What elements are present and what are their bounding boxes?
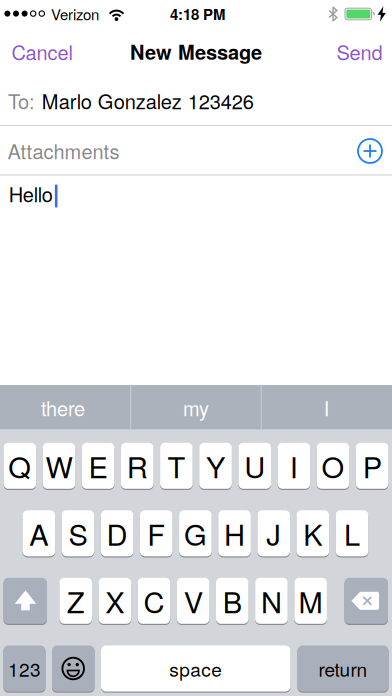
staticText: F [147, 512, 165, 554]
staticText: Q [8, 445, 31, 487]
button[interactable]: Add attachment [355, 136, 385, 166]
staticText: A [29, 512, 48, 554]
staticText: I [324, 393, 330, 422]
staticText: Cancel [11, 37, 72, 66]
button[interactable]: Delete [344, 577, 388, 625]
staticText: S [68, 512, 87, 554]
button[interactable]: H [218, 509, 251, 557]
staticText: N [261, 580, 282, 622]
staticText: E [89, 445, 108, 487]
button[interactable]: Send [327, 34, 391, 68]
button[interactable]: F [140, 509, 172, 557]
staticText: 123 [8, 655, 41, 682]
button[interactable]: L [336, 509, 368, 557]
staticText: Hello [9, 179, 53, 208]
staticText: D [107, 512, 128, 554]
button[interactable]: J [257, 509, 290, 557]
staticText: B [223, 580, 242, 622]
button[interactable]: space [101, 644, 290, 692]
button[interactable]: I [268, 385, 386, 429]
button[interactable]: there [4, 385, 122, 429]
staticText: O [321, 445, 344, 487]
staticText: Y [206, 445, 225, 487]
button[interactable]: R [121, 442, 154, 490]
button[interactable]: V [177, 577, 209, 625]
staticText: Z [67, 580, 85, 622]
button[interactable]: D [101, 509, 133, 557]
staticText: Verizon [51, 3, 99, 24]
button[interactable]: W [43, 442, 75, 490]
button[interactable]: T [160, 442, 193, 490]
button[interactable]: P [356, 442, 388, 490]
button[interactable]: N [255, 577, 288, 625]
staticText: To: [8, 86, 35, 115]
staticText: L [344, 512, 360, 554]
button[interactable]: E [82, 442, 114, 490]
staticText: Marlo Gonzalez 123426 [42, 86, 254, 115]
staticText: my [183, 393, 209, 422]
staticText: K [303, 512, 322, 554]
button[interactable]: Cancel [2, 34, 82, 68]
staticText: X [105, 580, 124, 622]
staticText: U [244, 445, 265, 487]
button[interactable]: G [179, 509, 212, 557]
button[interactable]: A [22, 509, 55, 557]
staticText: there [41, 393, 85, 422]
button[interactable]: K [297, 509, 329, 557]
staticText: W [45, 445, 72, 487]
button[interactable]: Z [59, 577, 92, 625]
button[interactable]: my [137, 385, 255, 429]
button[interactable]: 123 [3, 644, 45, 692]
button[interactable]: M [294, 577, 327, 625]
button[interactable]: O [317, 442, 349, 490]
button[interactable]: S [62, 509, 94, 557]
button[interactable]: return [297, 644, 388, 692]
staticText: space [169, 655, 222, 682]
staticText: P [363, 445, 382, 487]
staticText: return [318, 655, 367, 682]
button[interactable]: Shift [3, 577, 47, 625]
staticText: J [266, 512, 281, 554]
staticText: New Message [130, 37, 262, 66]
staticText: R [127, 445, 148, 487]
staticText: G [184, 512, 207, 554]
button[interactable]: B [216, 577, 249, 625]
staticText: 4:18 PM [170, 3, 225, 24]
button[interactable]: X [98, 577, 131, 625]
button[interactable]: Q [3, 442, 36, 490]
staticText: V [184, 580, 203, 622]
button[interactable]: C [138, 577, 170, 625]
staticText: I [290, 445, 298, 487]
button[interactable]: Y [199, 442, 232, 490]
button[interactable]: I [278, 442, 310, 490]
staticText: Send [336, 37, 382, 66]
staticText: Attachments [7, 136, 119, 165]
button[interactable]: Emoji [52, 644, 94, 692]
button[interactable]: U [238, 442, 271, 490]
staticText: T [167, 445, 185, 487]
staticText: M [299, 580, 323, 622]
staticText: C [143, 580, 164, 622]
staticText: H [224, 512, 245, 554]
